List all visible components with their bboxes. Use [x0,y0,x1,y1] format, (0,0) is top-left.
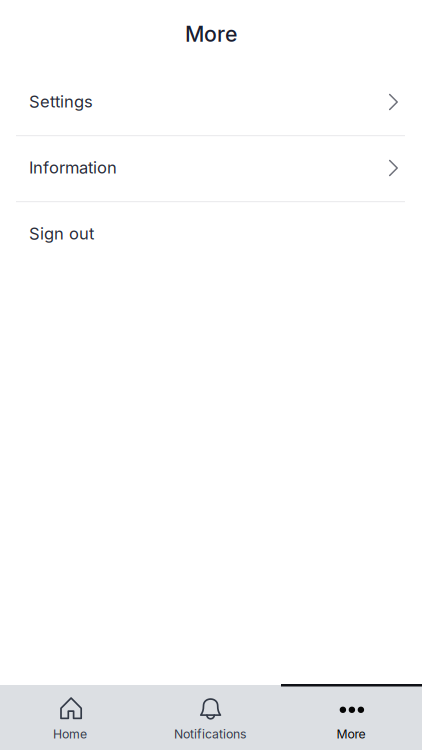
button[interactable]: More [280,685,422,750]
staticText: Settings [29,91,93,111]
staticText: More [185,21,237,47]
staticText: Sign out [29,223,94,243]
button[interactable]: Home [0,685,140,750]
button[interactable]: Sign out [0,200,422,266]
button[interactable]: Settings [0,68,422,134]
staticText: More [336,727,365,741]
staticText: Information [29,157,117,177]
button[interactable]: Information [0,134,422,200]
staticText: Home [53,727,87,741]
button[interactable]: Notifications [140,685,280,750]
staticText: Notifications [174,727,246,741]
